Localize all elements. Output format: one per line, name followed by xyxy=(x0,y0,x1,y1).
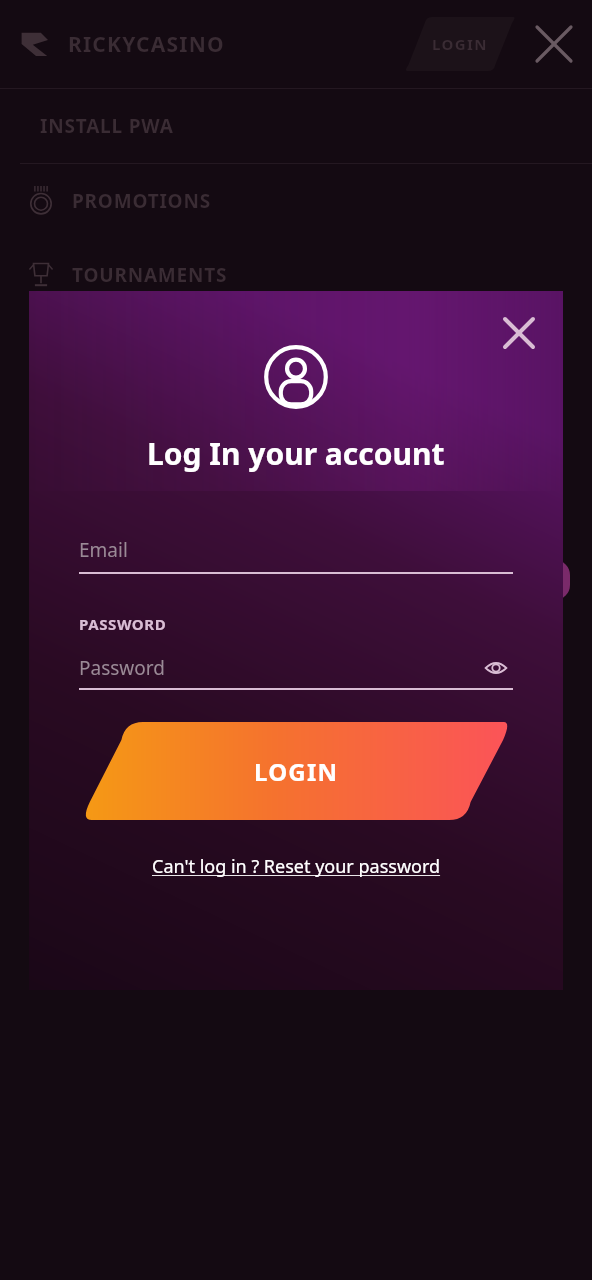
button[interactable]: PROMOTIONS xyxy=(0,164,592,238)
staticText: LOGIN xyxy=(432,34,488,54)
button[interactable]: Close dialog xyxy=(497,311,541,355)
button[interactable]: Password xyxy=(79,648,513,688)
button[interactable]: Email xyxy=(79,528,513,572)
staticText: Can't log in ? Reset your password xyxy=(152,854,441,879)
staticText: PASSWORD xyxy=(79,614,167,634)
staticText: Email xyxy=(79,537,128,563)
button[interactable]: INSTALL PWA xyxy=(0,89,592,163)
button[interactable]: Can't log in ? Reset your password xyxy=(146,848,447,885)
staticText: Password xyxy=(79,655,165,681)
staticText: TOURNAMENTS xyxy=(72,262,228,288)
button[interactable]: TOURNAMENTS xyxy=(0,238,592,312)
button[interactable]: LOGIN xyxy=(81,722,511,820)
staticText: LOGIN xyxy=(254,755,339,788)
button[interactable]: Close menu xyxy=(530,20,578,68)
staticText: RICKYCASINO xyxy=(68,30,225,59)
staticText: INSTALL PWA xyxy=(40,113,174,139)
staticText: PROMOTIONS xyxy=(72,188,211,214)
button[interactable]: Show password xyxy=(479,651,513,685)
staticText: Log In your account xyxy=(147,433,445,474)
button[interactable]: LOGIN xyxy=(404,17,516,71)
